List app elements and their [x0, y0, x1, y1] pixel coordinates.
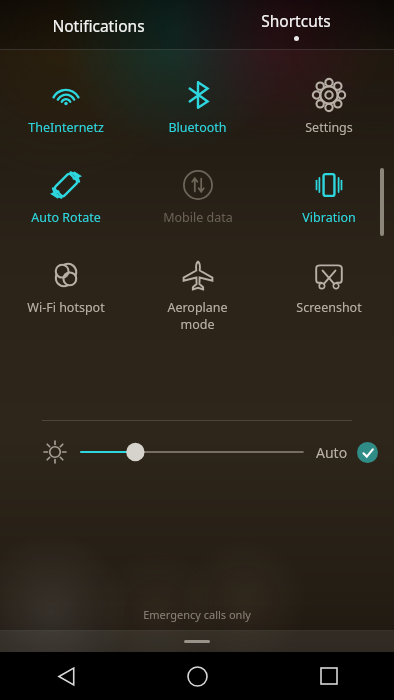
staticText: Bluetooth — [168, 119, 227, 136]
staticText: Settings — [305, 119, 353, 136]
button[interactable]: Wi-Fi hotspot — [0, 252, 132, 318]
button[interactable]: Collapse panel — [0, 631, 394, 652]
button[interactable]: Recent apps — [263, 652, 394, 700]
staticText: TheInternetz — [28, 119, 104, 136]
button[interactable]: Auto — [316, 442, 378, 463]
staticText: Auto Rotate — [31, 209, 101, 226]
button[interactable]: Settings — [263, 72, 394, 138]
staticText: Auto — [316, 443, 348, 462]
staticText: Aeroplane mode — [167, 299, 228, 332]
button[interactable]: Notifications — [0, 0, 197, 50]
button[interactable]: Vibration — [263, 162, 394, 228]
button[interactable]: TheInternetz — [0, 72, 132, 138]
button[interactable]: Screenshot — [263, 252, 394, 318]
button[interactable]: Brightness — [40, 437, 70, 467]
button[interactable]: Auto Rotate — [0, 162, 132, 228]
staticText: Shortcuts — [261, 10, 331, 31]
staticText: Wi-Fi hotspot — [27, 299, 105, 316]
button[interactable]: Brightness level — [81, 435, 303, 469]
staticText: Vibration — [302, 209, 356, 226]
staticText: Screenshot — [296, 299, 362, 316]
staticText: Notifications — [52, 15, 145, 36]
button[interactable]: Back — [0, 652, 132, 700]
button[interactable]: Bluetooth — [132, 72, 263, 138]
button[interactable]: Shortcuts — [197, 0, 394, 50]
staticText: Mobile data — [163, 209, 233, 226]
staticText: Emergency calls only — [0, 607, 394, 622]
button[interactable]: Home — [132, 652, 263, 700]
button[interactable]: Mobile data — [132, 162, 263, 228]
button[interactable]: Aeroplane mode — [132, 252, 263, 334]
